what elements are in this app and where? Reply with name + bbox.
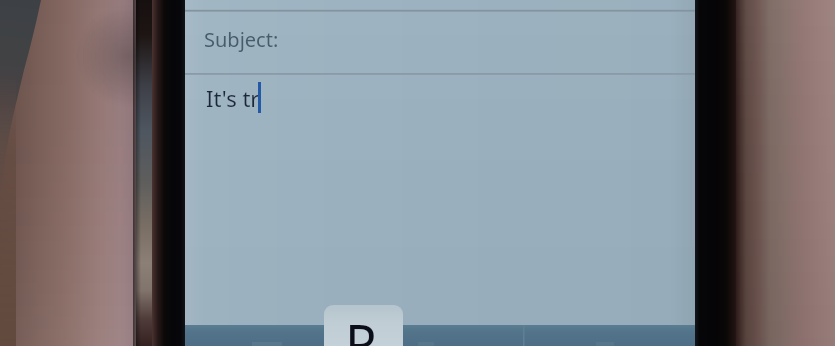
staticText: It's tr [206, 83, 260, 113]
staticText: P [345, 307, 377, 346]
staticText: Subject: [204, 26, 279, 53]
button[interactable]: P key [324, 305, 403, 346]
